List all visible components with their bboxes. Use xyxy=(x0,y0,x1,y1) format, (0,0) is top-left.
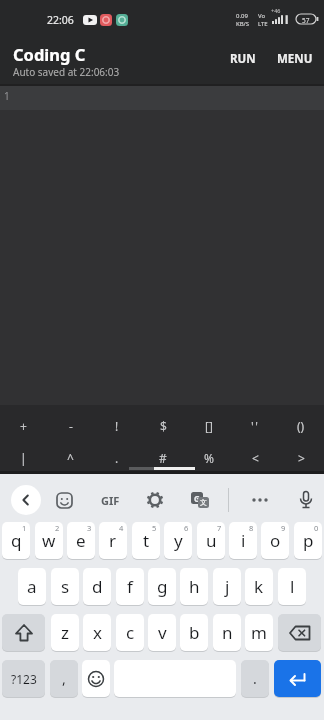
staticText: w xyxy=(42,529,56,552)
staticText: '' xyxy=(251,418,260,434)
button[interactable]: $ xyxy=(140,409,186,443)
button[interactable]: c xyxy=(116,614,144,651)
staticText: () xyxy=(297,418,305,434)
staticText: + xyxy=(20,418,27,434)
staticText: $ xyxy=(160,418,167,434)
button[interactable]: v xyxy=(148,614,176,651)
button[interactable] xyxy=(274,660,321,697)
button[interactable]: k xyxy=(245,568,273,605)
button[interactable]: ! xyxy=(94,409,140,443)
staticText: ! xyxy=(115,418,119,434)
button[interactable] xyxy=(2,614,45,651)
button[interactable]: y xyxy=(164,522,192,559)
button[interactable]: | xyxy=(0,443,47,473)
staticText: e xyxy=(76,529,86,552)
staticText: t xyxy=(143,529,150,552)
staticText: 8 xyxy=(249,523,254,533)
staticText: 6 xyxy=(184,523,189,533)
staticText: MENU xyxy=(277,51,313,67)
staticText: y xyxy=(174,529,183,552)
staticText: - xyxy=(69,418,73,434)
staticText: % xyxy=(204,450,214,466)
button[interactable]: n xyxy=(213,614,241,651)
button[interactable]: . xyxy=(241,660,269,697)
staticText: s xyxy=(61,575,70,598)
button[interactable]: + xyxy=(0,409,47,443)
staticText: # xyxy=(159,450,167,466)
staticText: 2 xyxy=(55,523,60,533)
button[interactable]: l xyxy=(278,568,306,605)
staticText: 57 xyxy=(302,16,310,25)
button[interactable]: MENU xyxy=(270,46,320,72)
staticText: ^ xyxy=(67,450,74,466)
button[interactable]: e xyxy=(67,522,95,559)
staticText: m xyxy=(251,621,267,644)
button[interactable] xyxy=(144,489,166,511)
button[interactable]: ?123 xyxy=(2,660,45,697)
staticText: < xyxy=(252,450,259,466)
staticText: z xyxy=(61,621,69,644)
button[interactable]: < xyxy=(232,443,278,473)
button[interactable]: a xyxy=(18,568,46,605)
button[interactable]: i xyxy=(229,522,257,559)
staticText: 4 xyxy=(119,523,124,533)
button[interactable]: p xyxy=(294,522,322,559)
staticText: k xyxy=(254,575,264,598)
staticText: KB/S xyxy=(236,20,250,28)
button[interactable]: u xyxy=(197,522,225,559)
staticText: q xyxy=(11,529,22,552)
button[interactable]: f xyxy=(116,568,144,605)
button[interactable]: g xyxy=(148,568,176,605)
button[interactable] xyxy=(11,485,41,515)
button[interactable]: % xyxy=(186,443,232,473)
button[interactable]: # xyxy=(140,443,186,473)
button[interactable]: . xyxy=(94,443,140,473)
staticText: g xyxy=(157,575,168,598)
button[interactable]: , xyxy=(50,660,78,697)
button[interactable]: s xyxy=(51,568,79,605)
button[interactable] xyxy=(82,660,110,697)
staticText: Vo xyxy=(258,12,266,20)
button[interactable]: q xyxy=(2,522,30,559)
staticText: , xyxy=(62,669,66,688)
button[interactable]: - xyxy=(47,409,94,443)
button[interactable]: [] xyxy=(186,409,232,443)
button[interactable]: b xyxy=(180,614,208,651)
button[interactable] xyxy=(249,489,271,511)
staticText: 1 xyxy=(4,89,10,103)
button[interactable]: G xyxy=(189,489,211,511)
staticText: 3 xyxy=(87,523,92,533)
staticText: 7 xyxy=(217,523,222,533)
staticText: RUN xyxy=(230,51,256,67)
button[interactable] xyxy=(53,489,75,511)
button[interactable]: r xyxy=(99,522,127,559)
staticText: +46 xyxy=(271,7,281,14)
staticText: 0.09 xyxy=(236,12,248,20)
button[interactable]: j xyxy=(213,568,241,605)
button[interactable]: w xyxy=(35,522,63,559)
button[interactable] xyxy=(295,489,317,511)
staticText: x xyxy=(93,621,102,644)
button[interactable]: z xyxy=(51,614,79,651)
button[interactable]: o xyxy=(261,522,289,559)
staticText: h xyxy=(189,575,200,598)
button[interactable]: h xyxy=(180,568,208,605)
staticText: r xyxy=(109,529,117,552)
button[interactable]: m xyxy=(245,614,273,651)
staticText: LTE xyxy=(258,20,268,28)
button[interactable]: d xyxy=(83,568,111,605)
button[interactable]: GIF xyxy=(96,489,124,511)
button[interactable]: t xyxy=(132,522,160,559)
staticText: v xyxy=(158,621,167,644)
staticText: a xyxy=(27,575,37,598)
button[interactable]: '' xyxy=(232,409,278,443)
staticText: u xyxy=(206,529,217,552)
button[interactable]: RUN xyxy=(222,46,264,72)
button[interactable]: x xyxy=(83,614,111,651)
button[interactable]: ^ xyxy=(47,443,94,473)
staticText: p xyxy=(303,529,314,552)
button[interactable]: > xyxy=(278,443,324,473)
button[interactable]: () xyxy=(278,409,324,443)
button[interactable] xyxy=(278,614,321,651)
